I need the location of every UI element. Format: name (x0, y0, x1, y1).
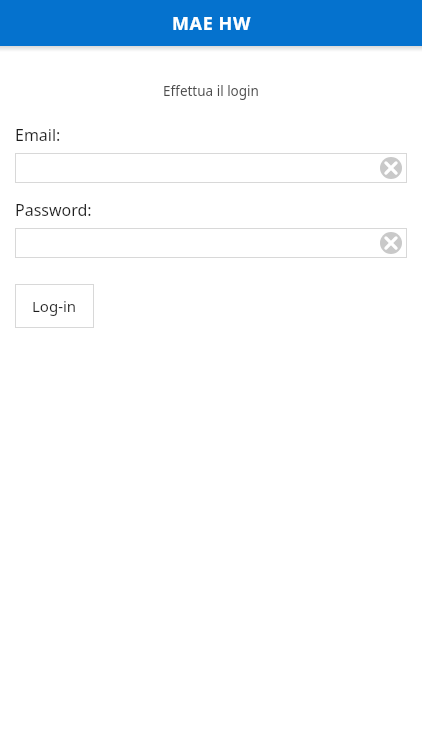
staticText: Effettua il login (0, 82, 422, 100)
button[interactable]: Clear text (15, 228, 407, 258)
button[interactable]: Clear text (380, 157, 402, 179)
staticText: Password: (15, 199, 92, 221)
staticText: MAE HW (172, 11, 251, 36)
button[interactable]: Clear text (380, 232, 402, 254)
staticText: Email: (15, 124, 61, 146)
button[interactable]: Clear text (15, 153, 407, 183)
staticText: Log-in (32, 296, 77, 316)
button[interactable]: Log-in (15, 284, 94, 328)
